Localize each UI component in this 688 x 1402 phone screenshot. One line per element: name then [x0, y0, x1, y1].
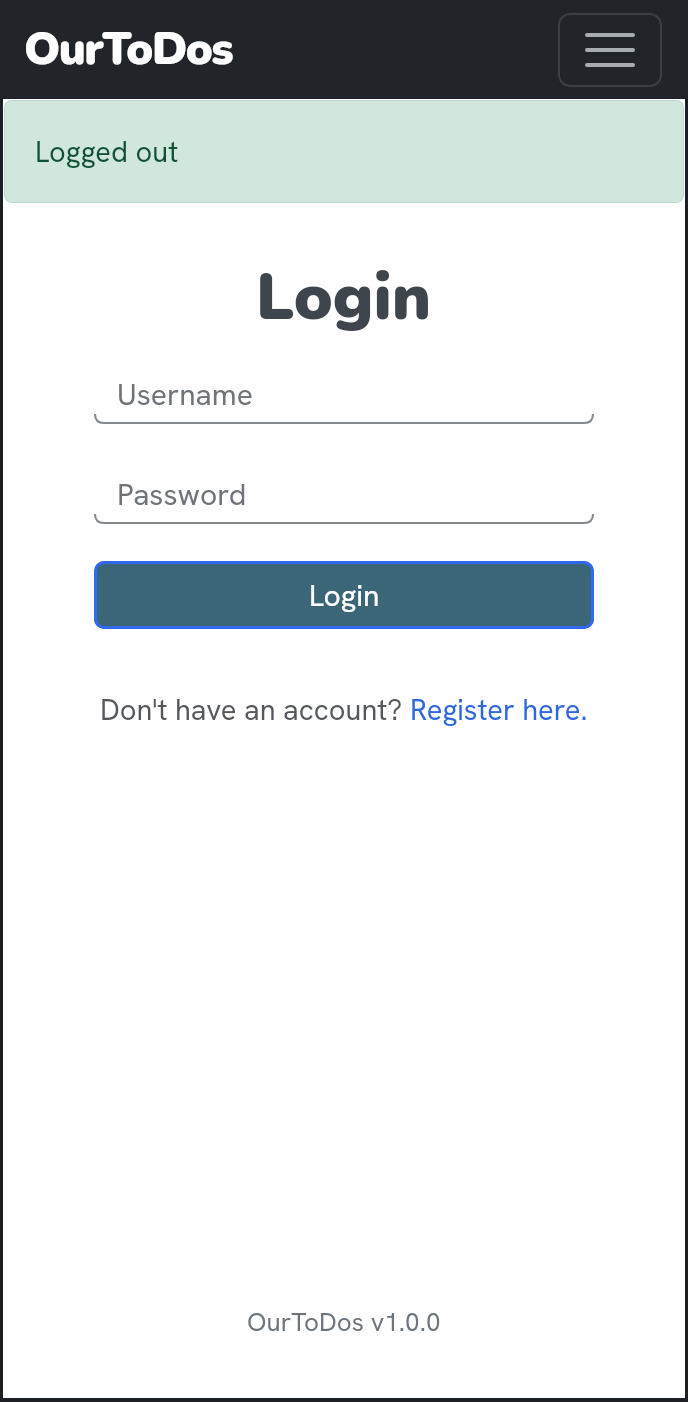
button[interactable]: Username [94, 375, 594, 424]
staticText: Login [256, 253, 432, 342]
button[interactable]: Login [94, 561, 594, 629]
staticText: Register here. [410, 691, 588, 729]
button[interactable]: Register here. [410, 691, 588, 729]
staticText: Login [309, 576, 380, 615]
staticText: Password [117, 475, 247, 514]
staticText: Username [117, 375, 253, 414]
staticText: OurToDos v1.0.0 [247, 1305, 441, 1339]
staticText: Don't have an account? [100, 691, 410, 729]
button[interactable] [558, 13, 662, 87]
staticText: OurToDos [24, 19, 233, 80]
staticText: Logged out [35, 133, 179, 171]
button[interactable]: Password [94, 475, 594, 524]
